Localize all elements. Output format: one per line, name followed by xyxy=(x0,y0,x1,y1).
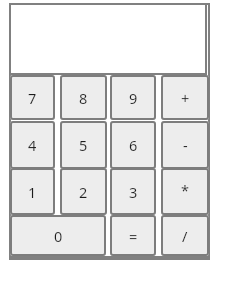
staticText: 3 xyxy=(129,182,138,202)
button[interactable]: / xyxy=(161,215,209,256)
button[interactable]: 4 xyxy=(10,121,55,169)
button[interactable]: 7 xyxy=(10,75,55,120)
button[interactable]: 9 xyxy=(110,75,156,120)
button[interactable]: 3 xyxy=(110,168,156,215)
staticText: 7 xyxy=(28,88,37,108)
staticText: 8 xyxy=(79,88,88,108)
button[interactable]: 1 xyxy=(10,168,55,215)
staticText: + xyxy=(181,88,190,108)
button[interactable]: 6 xyxy=(110,121,156,169)
staticText: * xyxy=(181,180,189,200)
staticText: 1 xyxy=(28,182,37,202)
button[interactable]: 8 xyxy=(60,75,107,120)
button[interactable] xyxy=(9,3,207,75)
button[interactable]: * xyxy=(161,168,209,215)
button[interactable]: + xyxy=(161,75,209,120)
button[interactable]: - xyxy=(161,121,209,169)
button[interactable]: 2 xyxy=(60,168,107,215)
staticText: - xyxy=(183,135,188,155)
staticText: 4 xyxy=(28,135,37,155)
button[interactable]: = xyxy=(110,215,156,256)
staticText: 6 xyxy=(129,135,138,155)
staticText: 0 xyxy=(54,226,63,246)
button[interactable]: 5 xyxy=(60,121,107,169)
staticText: 5 xyxy=(79,135,88,155)
staticText: 2 xyxy=(79,182,88,202)
button[interactable]: 0 xyxy=(10,215,106,256)
staticText: = xyxy=(129,226,138,246)
staticText: 9 xyxy=(129,88,138,108)
staticText: / xyxy=(182,226,188,246)
